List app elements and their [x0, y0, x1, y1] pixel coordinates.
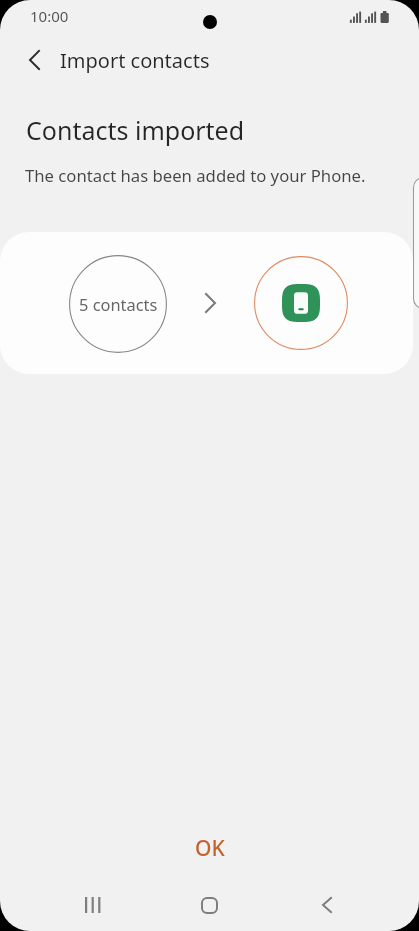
staticText: 5 contacts: [79, 293, 158, 315]
staticText: Contacts imported: [26, 113, 245, 147]
button[interactable]: 5 contacts: [0, 232, 413, 374]
staticText: 10:00: [30, 6, 69, 26]
staticText: OK: [195, 834, 225, 863]
button[interactable]: Back: [268, 879, 385, 931]
button[interactable]: Back: [14, 39, 55, 80]
staticText: The contact has been added to your Phone…: [25, 164, 366, 187]
button[interactable]: OK: [0, 826, 419, 870]
button[interactable]: Recents: [34, 879, 151, 931]
staticText: Import contacts: [60, 47, 210, 74]
button[interactable]: Home: [151, 879, 268, 931]
button[interactable]: Next step: [413, 177, 419, 309]
